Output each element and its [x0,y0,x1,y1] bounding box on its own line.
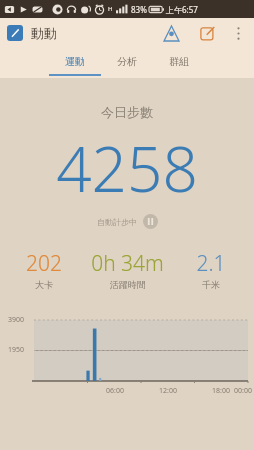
staticText: 1950 [8,345,25,355]
button[interactable]: 分析 [101,48,153,74]
button[interactable]: Pause auto step counting [0,214,254,229]
staticText: 分析 [117,55,137,68]
button[interactable]: App icon [7,25,23,41]
staticText: 06:00 [106,386,124,396]
staticText: 3900 [8,315,25,325]
staticText: 活躍時間 [110,279,146,290]
staticText: 動動 [31,25,57,41]
button[interactable]: 群組 [153,48,205,74]
staticText: 12:00 [159,386,177,396]
staticText: 大卡 [35,279,53,290]
staticText: 0h 34m [91,249,164,278]
button[interactable]: Edit [196,22,218,44]
button[interactable]: 202 [6,249,81,290]
button[interactable]: More options [228,23,248,43]
staticText: 今日步數 [0,104,254,120]
button[interactable]: Map [160,22,182,44]
staticText: 上午6:57 [166,4,198,15]
staticText: 4258 [0,126,254,210]
staticText: 千米 [202,279,220,290]
staticText: 自動計步中 [97,217,137,227]
staticText: 00:00 [234,386,252,396]
staticText: 83% [131,4,147,15]
button[interactable]: 0h 34m [81,249,174,290]
button[interactable]: 2.1 [174,249,248,290]
staticText: 運動 [65,55,85,68]
staticText: H [108,5,113,13]
staticText: 群組 [169,55,189,68]
button[interactable]: 運動 [49,48,101,74]
staticText: 18:00 [212,386,230,396]
staticText: 202 [26,249,62,278]
staticText: 2.1 [196,249,226,278]
